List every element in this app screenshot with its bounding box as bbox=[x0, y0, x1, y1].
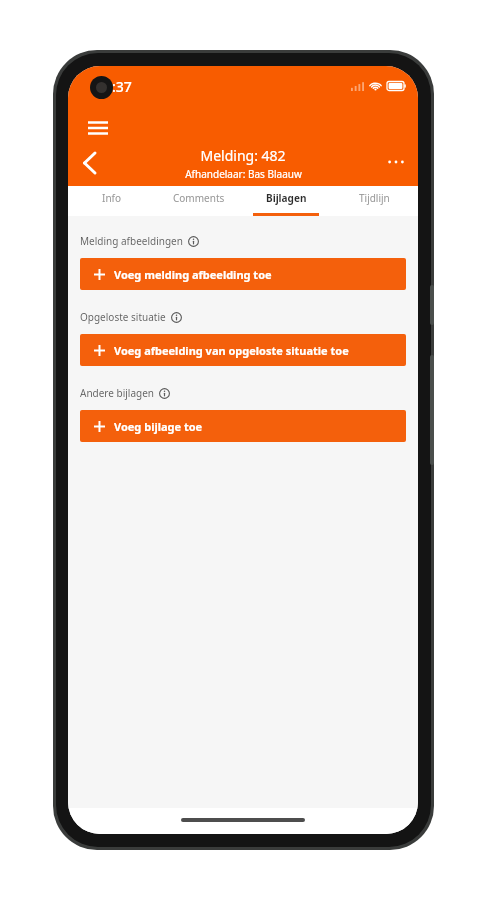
staticText: Andere bijlagen bbox=[80, 386, 154, 400]
button[interactable]: Back bbox=[70, 144, 108, 182]
staticText: Tijdlijn bbox=[359, 191, 390, 205]
staticText: Voeg bijlage toe bbox=[114, 419, 203, 434]
button[interactable]: Info bbox=[188, 236, 199, 247]
staticText: Melding: 482 bbox=[200, 146, 286, 165]
button[interactable]: More options bbox=[378, 144, 414, 180]
staticText: Melding afbeeldingen bbox=[80, 234, 183, 248]
staticText: Voeg afbeelding van opgeloste situatie t… bbox=[114, 343, 349, 358]
button[interactable]: Info bbox=[68, 186, 155, 216]
button[interactable]: Menu bbox=[80, 110, 116, 146]
button[interactable]: Info bbox=[171, 312, 182, 323]
button[interactable]: Comments bbox=[155, 186, 242, 216]
staticText: Opgeloste situatie bbox=[80, 310, 166, 324]
staticText: Afhandelaar: Bas Blaauw bbox=[185, 167, 302, 181]
button[interactable]: Tijdlijn bbox=[330, 186, 418, 216]
button[interactable]: Info bbox=[159, 388, 170, 399]
staticText: Info bbox=[102, 191, 122, 205]
button[interactable]: Bijlagen bbox=[242, 186, 330, 216]
button[interactable]: Voeg afbeelding van opgeloste situatie t… bbox=[80, 334, 406, 366]
staticText: Comments bbox=[173, 191, 225, 205]
button[interactable]: Voeg melding afbeelding toe bbox=[80, 258, 406, 290]
button[interactable]: Voeg bijlage toe bbox=[80, 410, 406, 442]
staticText: Voeg melding afbeelding toe bbox=[114, 267, 272, 282]
staticText: Bijlagen bbox=[266, 191, 307, 205]
staticText: 09:37 bbox=[96, 77, 132, 96]
